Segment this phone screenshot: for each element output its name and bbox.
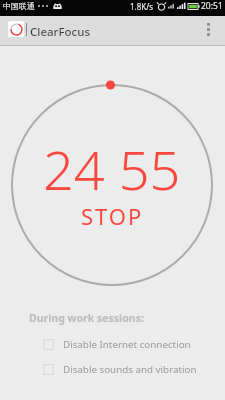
staticText: Disable Internet connection [63,338,191,351]
staticText: Disable sounds and vibration [63,363,197,376]
button[interactable]: Disable Internet connection [0,333,225,355]
staticText: 24 55 [43,132,181,206]
staticText: 20:51 [201,0,223,12]
staticText: During work sessions: [29,311,144,325]
staticText: ClearFocus [30,24,90,40]
staticText: 中国联通 [3,1,35,11]
staticText: STOP [81,201,144,231]
button[interactable]: More options [197,16,221,40]
button[interactable]: Disable sounds and vibration [0,358,225,380]
staticText: 1.8K/s [130,1,154,12]
